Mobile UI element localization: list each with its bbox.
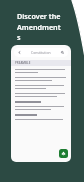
staticText: Constitution <box>31 50 51 55</box>
staticText: Discover the <box>17 11 61 21</box>
button[interactable]: Back <box>14 48 68 57</box>
button[interactable]: Back <box>17 50 22 55</box>
staticText: Amendments <box>17 22 64 42</box>
staticText: PREAMBLE <box>15 61 31 65</box>
button[interactable]: Add bookmark <box>59 149 68 158</box>
button[interactable]: Search <box>60 50 65 55</box>
button[interactable]: PREAMBLE <box>11 60 71 66</box>
